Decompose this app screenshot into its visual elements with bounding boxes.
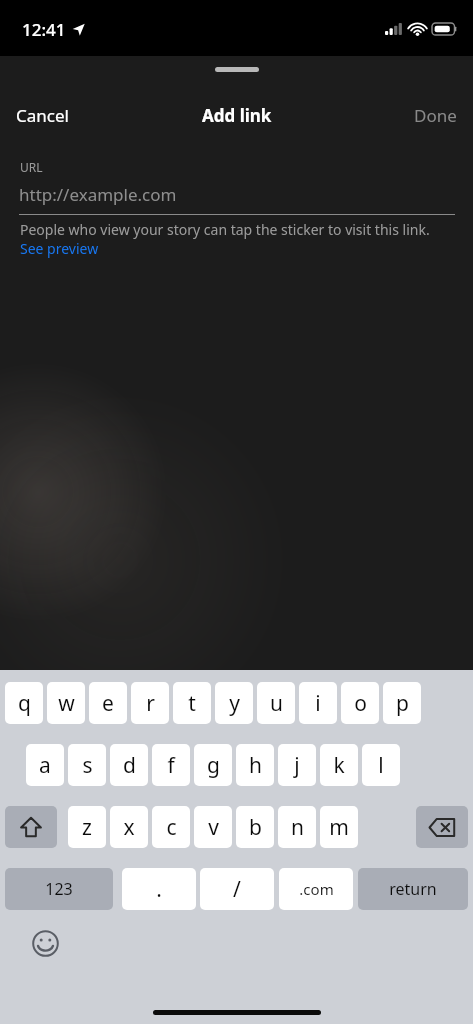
button[interactable]: g [194, 744, 232, 786]
button[interactable]: Done [398, 99, 473, 132]
staticText: . [156, 875, 162, 904]
button[interactable]: v [194, 806, 232, 848]
button[interactable]: Emoji keyboard [30, 928, 60, 958]
staticText: h [249, 751, 262, 780]
button[interactable]: y [215, 682, 253, 724]
staticText: s [82, 751, 93, 780]
staticText: Cancel [16, 104, 69, 127]
button[interactable]: z [68, 806, 106, 848]
button[interactable]: Backspace [416, 806, 468, 848]
button[interactable]: b [236, 806, 274, 848]
staticText: x [123, 813, 135, 842]
button[interactable]: . [122, 868, 196, 910]
button[interactable]: i [299, 682, 337, 724]
button[interactable]: l [362, 744, 400, 786]
button[interactable]: h [236, 744, 274, 786]
staticText: r [146, 689, 155, 718]
staticText: n [291, 813, 304, 842]
staticText: e [102, 689, 114, 718]
staticText: o [354, 689, 367, 718]
button[interactable]: u [257, 682, 295, 724]
staticText: y [229, 689, 240, 718]
button[interactable]: k [320, 744, 358, 786]
staticText: d [123, 751, 136, 780]
button[interactable]: t [173, 682, 211, 724]
staticText: p [396, 689, 409, 718]
staticText: v [208, 813, 219, 842]
button[interactable]: o [341, 682, 379, 724]
staticText: / [233, 875, 241, 904]
button[interactable]: r [131, 682, 169, 724]
staticText: Add link [202, 104, 272, 127]
staticText: 12:41 [22, 18, 66, 41]
button[interactable]: f [152, 744, 190, 786]
button[interactable]: .com [279, 868, 353, 910]
staticText: c [166, 813, 177, 842]
button[interactable]: Cancel [0, 99, 85, 132]
staticText: b [249, 813, 262, 842]
button[interactable]: Shift [5, 806, 57, 848]
staticText: g [207, 751, 220, 780]
staticText: j [294, 751, 300, 780]
staticText: People who view your story can tap the s… [20, 220, 456, 258]
button[interactable]: / [200, 868, 274, 910]
staticText: k [333, 751, 345, 780]
button[interactable]: c [152, 806, 190, 848]
button[interactable]: d [110, 744, 148, 786]
button[interactable]: e [89, 682, 127, 724]
button[interactable]: w [47, 682, 85, 724]
button[interactable]: p [383, 682, 421, 724]
staticText: l [378, 751, 384, 780]
staticText: .com [299, 879, 334, 899]
staticText: z [82, 813, 92, 842]
staticText: q [18, 689, 31, 718]
staticText: w [58, 689, 75, 718]
button[interactable]: 123 [5, 868, 113, 910]
staticText: m [329, 813, 349, 842]
staticText: u [270, 689, 283, 718]
staticText: f [167, 751, 175, 780]
staticText: a [39, 751, 51, 780]
button[interactable]: s [68, 744, 106, 786]
staticText: t [188, 689, 196, 718]
button[interactable]: m [320, 806, 358, 848]
staticText: i [315, 689, 321, 718]
staticText: 123 [45, 878, 73, 900]
button[interactable]: j [278, 744, 316, 786]
button[interactable]: n [278, 806, 316, 848]
staticText: URL [20, 159, 43, 175]
staticText: http://example.com [19, 183, 177, 206]
button[interactable]: http://example.com [19, 178, 455, 210]
button[interactable]: q [5, 682, 43, 724]
button[interactable]: a [26, 744, 64, 786]
staticText: return [389, 878, 437, 900]
button[interactable]: x [110, 806, 148, 848]
staticText: Done [414, 104, 457, 127]
button[interactable]: return [358, 868, 468, 910]
